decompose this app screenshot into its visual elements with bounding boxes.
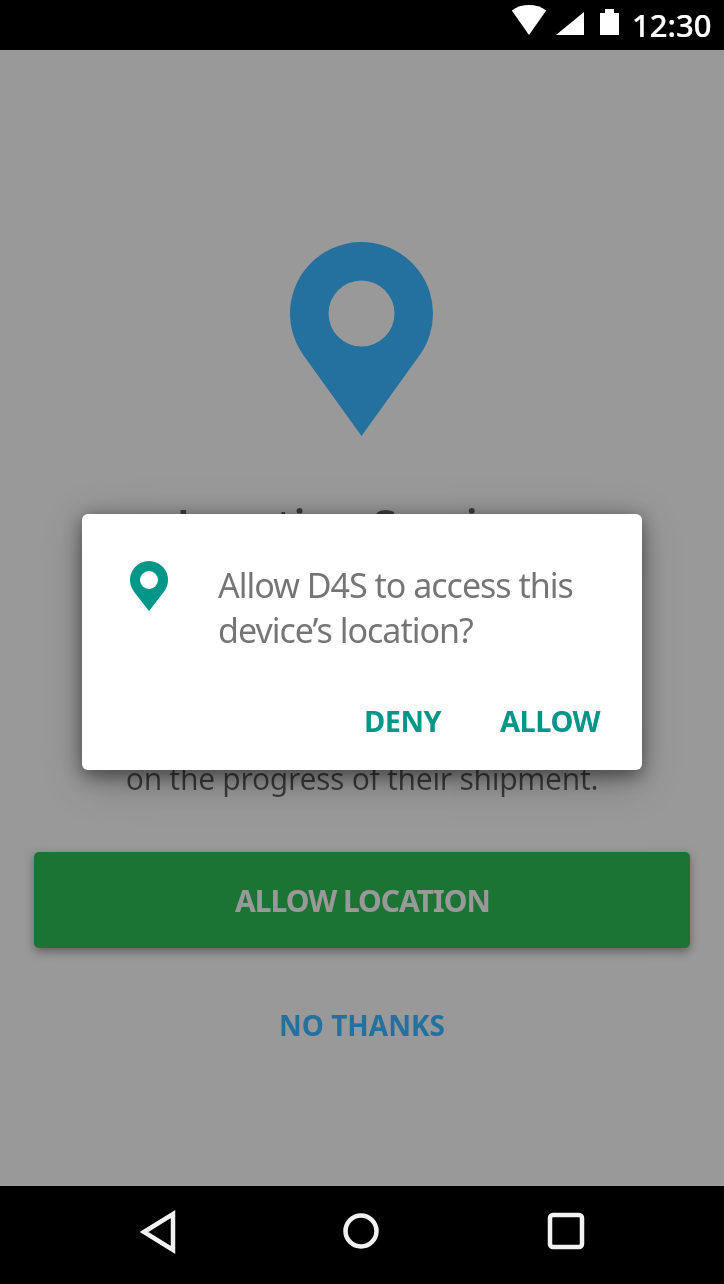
staticText: on the progress of their shipment. bbox=[0, 758, 724, 799]
staticText: DENY bbox=[364, 701, 442, 740]
staticText: ALLOW LOCATION bbox=[235, 880, 490, 921]
staticText: NO THANKS bbox=[279, 1006, 445, 1044]
button[interactable]: ALLOW LOCATION bbox=[34, 852, 690, 948]
button[interactable]: NO THANKS bbox=[262, 995, 462, 1055]
button[interactable] bbox=[483, 1186, 724, 1284]
staticText: 12:30 bbox=[632, 4, 712, 46]
button[interactable]: DENY bbox=[341, 690, 465, 750]
button[interactable] bbox=[0, 1186, 242, 1284]
button[interactable] bbox=[242, 1186, 483, 1284]
staticText: Location Services bbox=[0, 494, 724, 554]
staticText: Allow D4S to access this device’s locati… bbox=[218, 562, 573, 653]
staticText: ALLOW bbox=[500, 701, 601, 740]
button[interactable]: ALLOW bbox=[480, 690, 620, 750]
